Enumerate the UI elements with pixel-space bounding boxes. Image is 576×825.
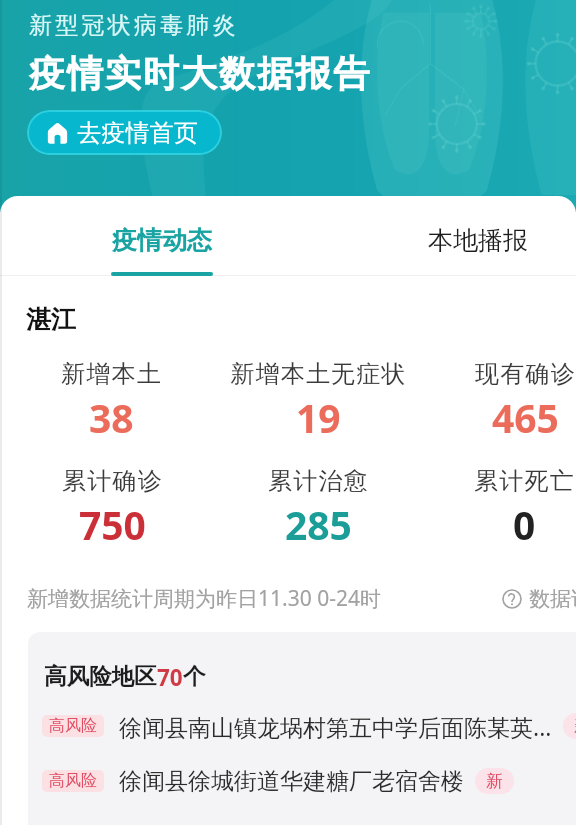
button[interactable]: 累计确诊 bbox=[2, 466, 222, 551]
staticText: 数据说明 bbox=[529, 586, 576, 612]
staticText: 高风险 bbox=[49, 716, 97, 736]
staticText: 0 bbox=[513, 498, 536, 551]
staticText: 新 bbox=[486, 771, 503, 792]
button[interactable]: 数据说明 bbox=[502, 586, 576, 612]
staticText: 新 bbox=[574, 716, 576, 737]
button[interactable]: 高风险 bbox=[28, 759, 576, 803]
staticText: 湛江 bbox=[26, 304, 76, 335]
staticText: 新型冠状病毒肺炎 bbox=[29, 11, 239, 40]
staticText: 疫情实时大数据报告 bbox=[28, 51, 370, 96]
staticText: 新增数据统计周期为昨日11.30 0-24时 bbox=[27, 584, 381, 613]
staticText: 高风险 bbox=[49, 771, 97, 791]
staticText: 徐闻县徐城街道华建糖厂老宿舍楼 bbox=[119, 767, 464, 796]
staticText: 新增本土 bbox=[61, 359, 162, 389]
staticText: 去疫情首页 bbox=[77, 118, 198, 148]
staticText: 疫情动态 bbox=[112, 225, 212, 256]
staticText: 累计确诊 bbox=[62, 466, 163, 496]
button[interactable]: 累计死亡 bbox=[414, 466, 576, 551]
staticText: 累计治愈 bbox=[268, 466, 369, 496]
staticText: 本地播报 bbox=[428, 225, 528, 256]
staticText: 465 bbox=[492, 391, 559, 444]
staticText: 个 bbox=[183, 662, 206, 690]
button[interactable]: 新增本土无症状 bbox=[208, 359, 428, 444]
button[interactable]: 新增本土 bbox=[1, 359, 221, 444]
staticText: 38 bbox=[89, 391, 134, 444]
staticText: 累计死亡 bbox=[474, 466, 575, 496]
staticText: 新增本土无症状 bbox=[230, 359, 407, 389]
button[interactable]: 本地播报 bbox=[368, 206, 576, 276]
button[interactable]: 累计治愈 bbox=[208, 466, 428, 551]
staticText: 19 bbox=[296, 391, 341, 444]
button[interactable]: 疫情动态 bbox=[52, 206, 272, 276]
staticText: 750 bbox=[79, 498, 146, 551]
button[interactable]: 去疫情首页 bbox=[27, 110, 222, 155]
staticText: 徐闻县南山镇龙埚村第五中学后面陈某英... bbox=[119, 711, 552, 742]
staticText: 高风险地区 bbox=[44, 662, 157, 690]
staticText: 现有确诊 bbox=[475, 359, 576, 389]
staticText: 285 bbox=[285, 498, 352, 551]
staticText: 70 bbox=[157, 662, 183, 693]
other: 去疫情首页 bbox=[47, 123, 68, 144]
other: 数据说明 bbox=[502, 589, 522, 609]
button[interactable]: 高风险 bbox=[28, 704, 576, 748]
button[interactable]: 现有确诊 bbox=[415, 359, 576, 444]
